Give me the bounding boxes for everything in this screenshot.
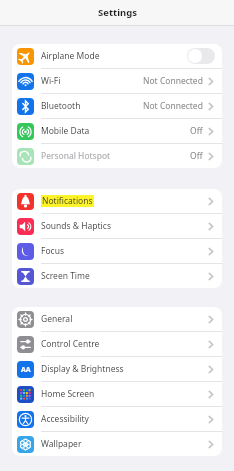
staticText: Not Connected xyxy=(143,75,203,87)
staticText: Personal Hotspot xyxy=(41,150,111,162)
staticText: Not Connected xyxy=(143,100,203,112)
button[interactable]: Airplane Mode xyxy=(12,44,222,68)
button[interactable]: AA xyxy=(12,357,222,381)
staticText: Mobile Data xyxy=(41,125,90,137)
staticText: Wallpaper xyxy=(41,438,82,450)
staticText: AA xyxy=(21,365,31,375)
staticText: Home Screen xyxy=(41,388,95,400)
staticText: Off xyxy=(190,125,203,137)
staticText: Wi-Fi xyxy=(41,75,61,87)
button[interactable]: Sounds & Haptics xyxy=(12,214,222,238)
button[interactable]: Focus xyxy=(12,239,222,263)
staticText: Airplane Mode xyxy=(41,50,100,62)
staticText: Off xyxy=(190,150,203,162)
button[interactable]: Accessibility xyxy=(12,407,222,431)
button[interactable]: Wi-Fi xyxy=(12,69,222,93)
staticText: Sounds & Haptics xyxy=(41,220,111,232)
button[interactable]: Airplane Mode toggle xyxy=(187,48,215,64)
button[interactable]: General xyxy=(12,307,222,331)
button[interactable]: Control Centre xyxy=(12,332,222,356)
staticText: Bluetooth xyxy=(41,100,81,112)
staticText: Screen Time xyxy=(41,270,90,282)
button[interactable]: Bluetooth xyxy=(12,94,222,118)
staticText: Accessibility xyxy=(41,413,89,425)
button[interactable]: Home Screen xyxy=(12,382,222,406)
staticText: General xyxy=(41,313,73,325)
staticText: Display & Brightness xyxy=(41,363,124,375)
staticText: Control Centre xyxy=(41,338,100,350)
button[interactable]: Notifications xyxy=(12,189,222,213)
staticText: Focus xyxy=(41,245,64,257)
button[interactable]: Mobile Data xyxy=(12,119,222,143)
staticText: Settings xyxy=(98,6,137,19)
button[interactable]: Wallpaper xyxy=(12,432,222,456)
button[interactable]: Personal Hotspot xyxy=(12,144,222,168)
button[interactable]: Screen Time xyxy=(12,264,222,288)
staticText: Notifications xyxy=(42,195,93,207)
